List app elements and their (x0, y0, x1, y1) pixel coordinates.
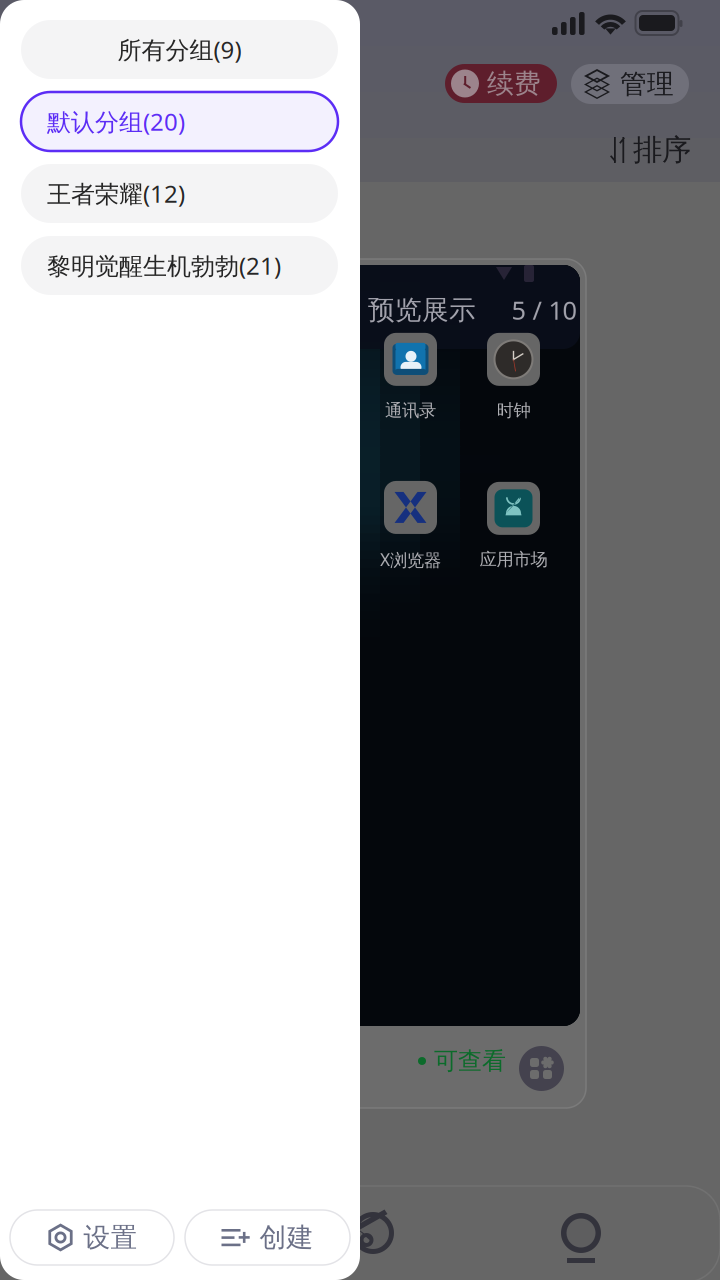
staticText: 可查看 (434, 1046, 506, 1076)
staticText: 排序 (633, 132, 691, 168)
staticText: 应用市场 (479, 549, 547, 570)
button[interactable]: 续费 (445, 64, 557, 103)
button[interactable]: 我的 (556, 1208, 606, 1264)
staticText: 时钟 (496, 400, 530, 421)
button[interactable]: 所有分组(9) (21, 20, 338, 79)
staticText: 设置 (83, 1221, 137, 1254)
button[interactable]: 创建 (185, 1210, 350, 1265)
staticText: 创建 (259, 1221, 313, 1254)
button[interactable]: 发现 (348, 1208, 398, 1258)
staticText: 所有分组(9) (117, 34, 241, 65)
staticText: 续费 (487, 67, 541, 100)
staticText: 王者荣耀(12) (47, 178, 185, 209)
button[interactable]: 默认分组(20) (21, 92, 338, 151)
staticText: 预览展示 (368, 294, 476, 326)
button[interactable]: 应用设置 (519, 1046, 564, 1091)
staticText: X浏览器 (380, 548, 441, 571)
button[interactable]: 排序 (610, 132, 700, 168)
button[interactable]: 王者荣耀(12) (21, 164, 338, 223)
button[interactable]: 管理 (571, 64, 689, 104)
staticText: 管理 (620, 68, 674, 100)
staticText: 黎明觉醒生机勃勃(21) (47, 250, 281, 281)
button[interactable]: 设置 (10, 1210, 174, 1265)
staticText: 通讯录 (385, 400, 436, 421)
button[interactable]: 黎明觉醒生机勃勃(21) (21, 236, 338, 295)
staticText: 默认分组(20) (47, 106, 185, 137)
staticText: 5 / 10 (511, 293, 576, 327)
